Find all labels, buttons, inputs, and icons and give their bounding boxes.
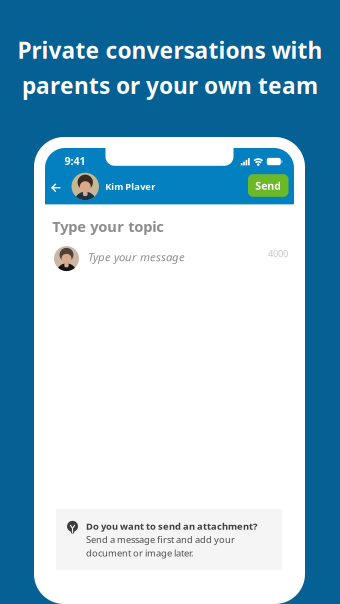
staticText: Send a message first and add your [86, 533, 235, 546]
staticText: 4000 [268, 247, 288, 259]
staticText: Private conversations with [17, 35, 322, 65]
staticText: Type your topic [52, 217, 164, 236]
staticText: Do you want to send an attachment? [86, 520, 257, 532]
staticText: document or image later. [86, 547, 194, 559]
staticText: Type your message [88, 249, 185, 264]
button[interactable]: Back [45, 177, 67, 198]
button[interactable]: Send [248, 174, 288, 197]
staticText: Kim Plaver [105, 180, 155, 193]
staticText: 9:41 [64, 154, 85, 168]
staticText: Send [255, 178, 281, 193]
staticText: parents or your own team [22, 70, 318, 100]
